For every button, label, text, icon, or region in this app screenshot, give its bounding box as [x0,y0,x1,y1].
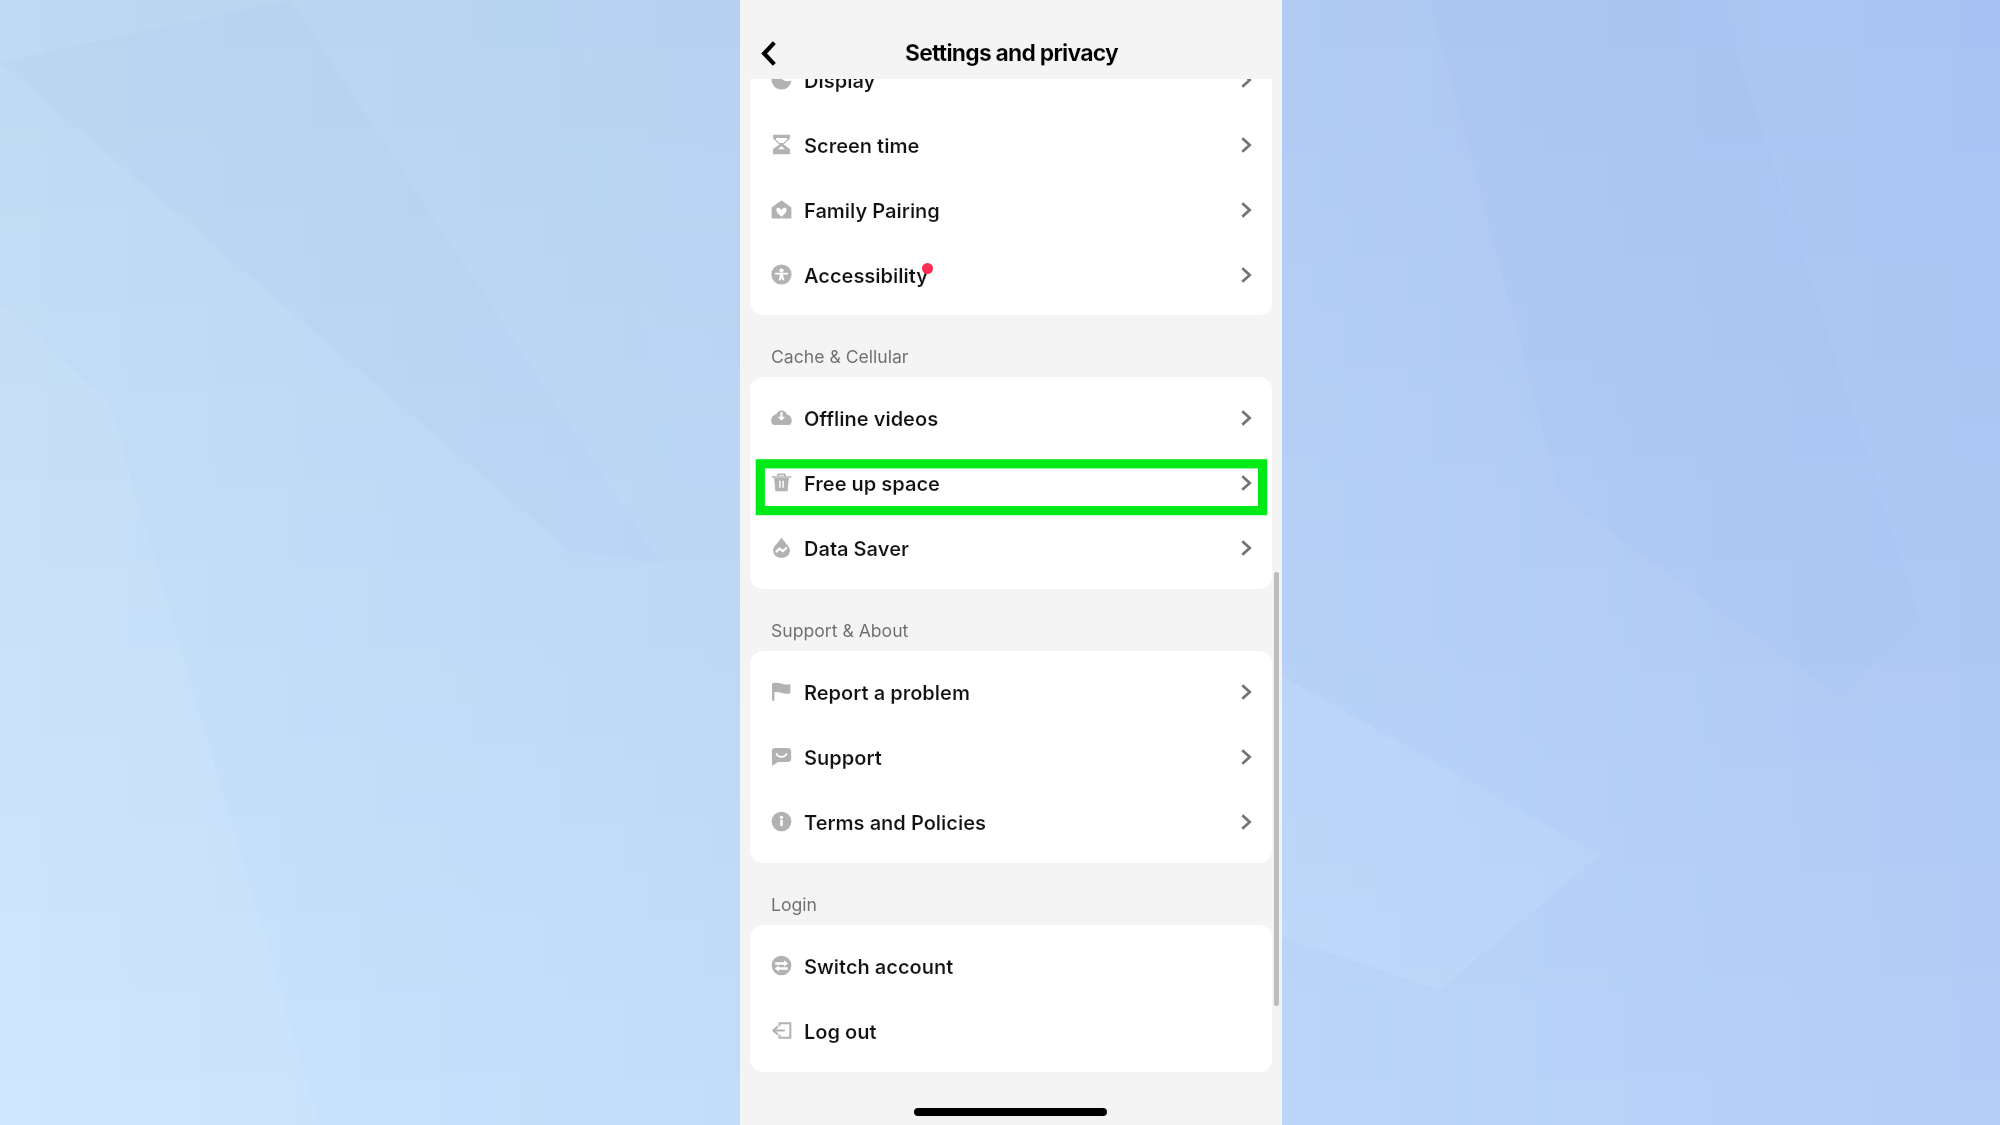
staticText: Switch account [804,955,954,979]
button[interactable]: Terms and Policies [750,789,1272,854]
button[interactable]: Screen time [750,112,1272,177]
button[interactable]: Switch account [750,933,1272,998]
button[interactable]: Accessibility [750,242,1272,307]
staticText: Support & About [771,620,909,641]
staticText: Log out [804,1020,877,1044]
staticText: Support [804,746,882,770]
button[interactable]: Log out [750,998,1272,1063]
staticText: Cache & Cellular [771,346,909,367]
staticText: Display [804,79,876,93]
button[interactable]: Offline videos [750,385,1272,450]
button[interactable]: Data Saver [750,515,1272,580]
button[interactable]: Support [750,724,1272,789]
button[interactable]: Free up space [750,450,1272,515]
staticText: Family Pairing [804,199,940,223]
staticText: Settings and privacy [905,39,1118,67]
staticText: Accessibility [804,264,929,288]
staticText: Data Saver [804,537,909,561]
staticText: Terms and Policies [804,811,986,835]
staticText: Login [771,894,817,915]
staticText: Report a problem [804,681,970,705]
button[interactable]: Back [744,29,792,77]
button[interactable]: Family Pairing [750,177,1272,242]
staticText: Offline videos [804,407,939,431]
staticText: Screen time [804,134,920,158]
button[interactable]: Report a problem [750,659,1272,724]
button[interactable]: Display [750,79,1272,112]
staticText: Free up space [804,472,940,496]
